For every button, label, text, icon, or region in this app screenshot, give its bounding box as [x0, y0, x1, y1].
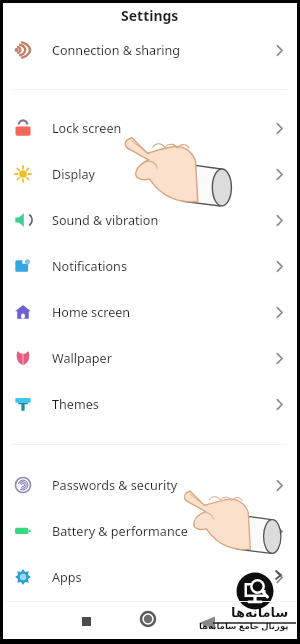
staticText: Passwords & security: [52, 477, 178, 494]
button[interactable]: Display: [3, 151, 297, 197]
staticText: پورتال جامع سامانه‌ها: [199, 620, 289, 632]
button[interactable]: Themes: [3, 381, 297, 427]
button[interactable]: Wallpaper: [3, 335, 297, 381]
staticText: Wallpaper: [52, 350, 112, 367]
button[interactable]: Passwords & security: [3, 462, 297, 508]
button[interactable]: Home screen: [3, 289, 297, 335]
staticText: Sound & vibration: [52, 212, 159, 229]
staticText: Lock screen: [52, 120, 122, 137]
staticText: Display: [52, 166, 95, 183]
button[interactable]: Sound & vibration: [3, 197, 297, 243]
staticText: سامانه‌ها: [231, 605, 289, 620]
staticText: Home screen: [52, 304, 131, 321]
staticText: Battery & performance: [52, 523, 188, 540]
staticText: Notifications: [52, 258, 127, 275]
staticText: Apps: [52, 569, 82, 586]
button[interactable]: Battery & performance: [3, 508, 297, 554]
button[interactable]: Apps: [3, 554, 297, 600]
staticText: Themes: [52, 396, 99, 413]
button[interactable]: Lock screen: [3, 105, 297, 151]
staticText: Connection & sharing: [52, 42, 181, 59]
button[interactable]: Recents: [71, 606, 101, 636]
staticText: Settings: [121, 6, 179, 25]
button[interactable]: Home: [133, 604, 163, 634]
button[interactable]: Connection & sharing: [3, 27, 297, 73]
button[interactable]: Notifications: [3, 243, 297, 289]
